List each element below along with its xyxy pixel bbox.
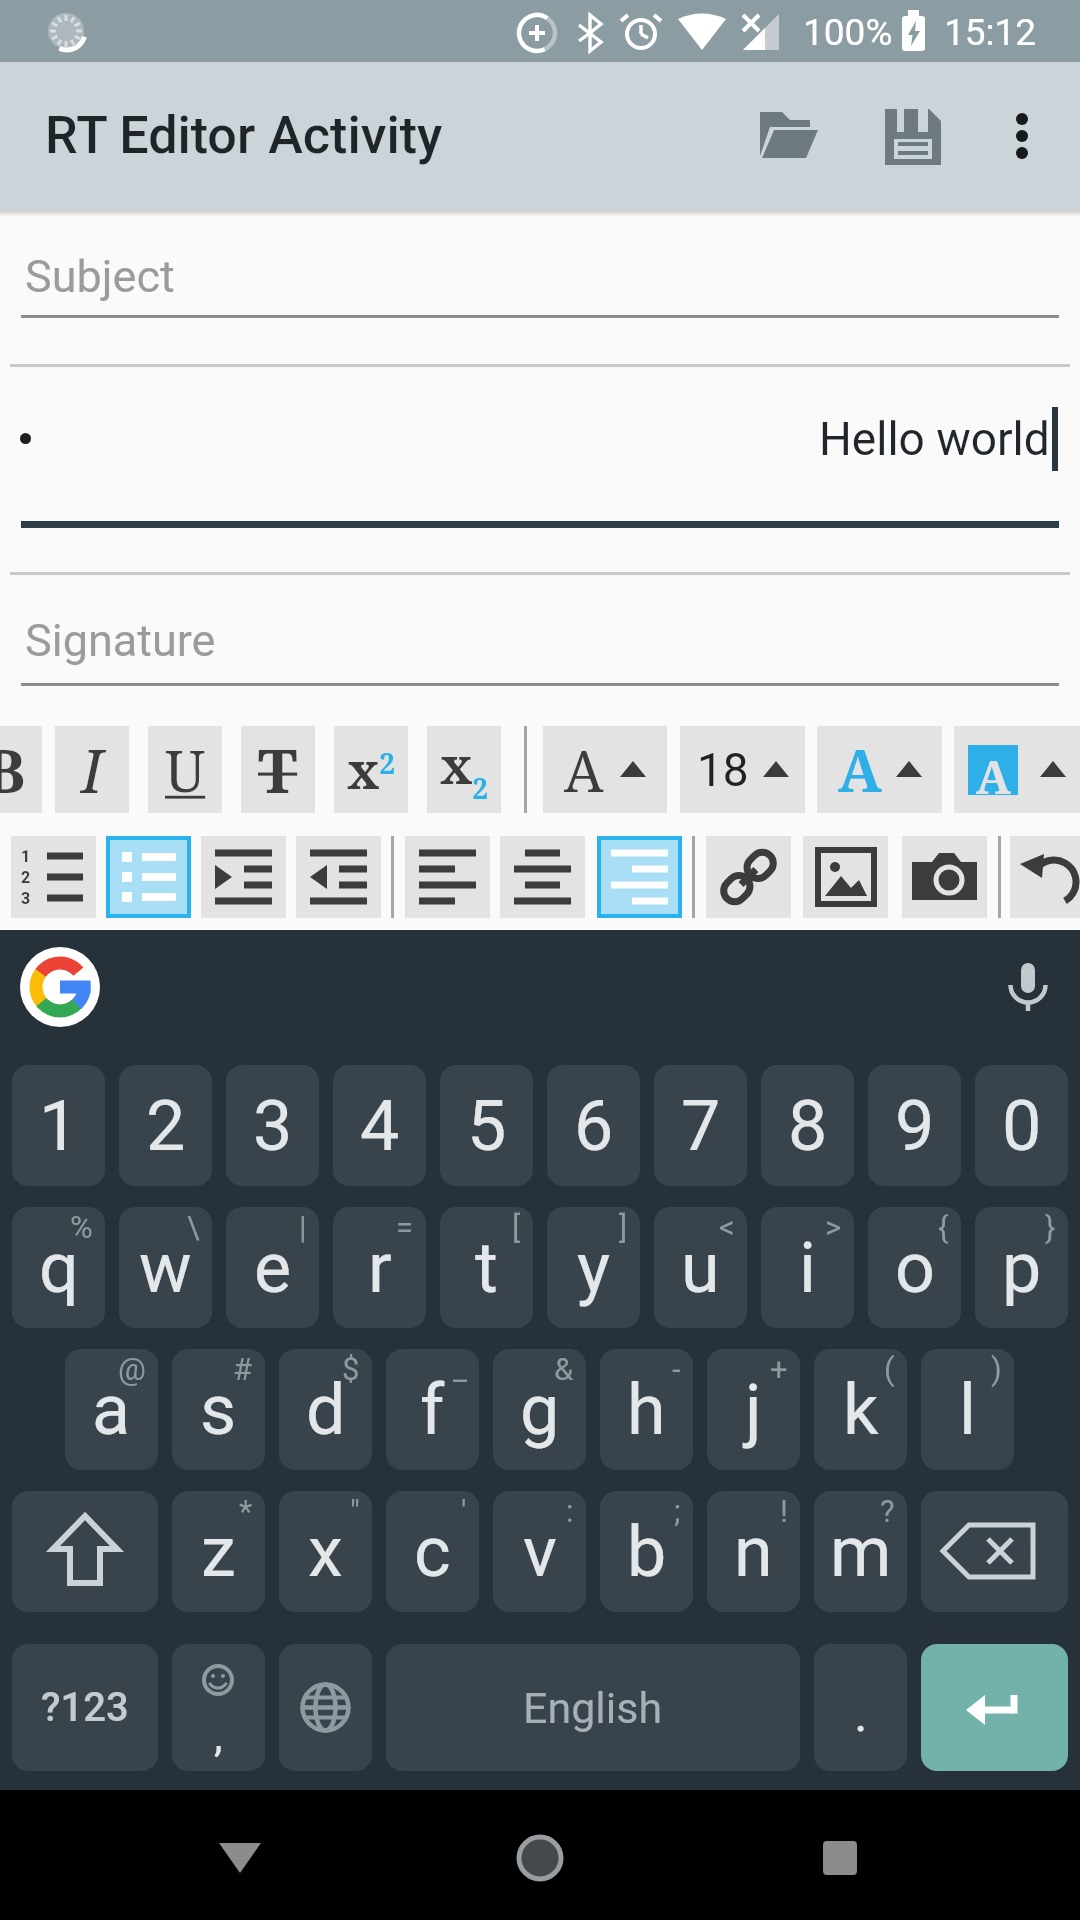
button[interactable]: 6	[547, 1065, 640, 1186]
button[interactable]	[902, 836, 987, 918]
staticText: \	[187, 1209, 200, 1245]
button[interactable]: 1 2 3	[11, 836, 96, 918]
staticText: 3	[253, 1085, 293, 1167]
staticText: r	[368, 1227, 392, 1309]
button[interactable]: x2	[427, 726, 501, 813]
staticText: #	[233, 1351, 253, 1387]
button[interactable]	[706, 836, 791, 918]
button[interactable]	[201, 836, 286, 918]
staticText: [	[512, 1209, 521, 1245]
button[interactable]: g	[493, 1349, 586, 1470]
button[interactable]: 1	[12, 1065, 105, 1186]
button[interactable]: c	[386, 1491, 479, 1612]
button[interactable]	[190, 1810, 290, 1900]
button[interactable]: x2	[334, 726, 408, 813]
button[interactable]: f	[386, 1349, 479, 1470]
button[interactable]: Signature	[22, 604, 1058, 684]
button[interactable]: s	[172, 1349, 265, 1470]
button[interactable]: 9	[868, 1065, 961, 1186]
button[interactable]	[978, 84, 1068, 188]
staticText: >	[825, 1209, 842, 1245]
button[interactable]	[803, 836, 888, 918]
button[interactable]: A	[543, 726, 667, 813]
button[interactable]: k	[814, 1349, 907, 1470]
staticText: o	[895, 1227, 935, 1309]
staticText: a	[92, 1369, 131, 1451]
button[interactable]	[405, 836, 490, 918]
staticText: (	[884, 1351, 895, 1387]
button[interactable]	[20, 947, 100, 1027]
button[interactable]: o	[868, 1207, 961, 1328]
staticText: 5	[467, 1085, 507, 1167]
staticText: c	[414, 1511, 451, 1593]
button[interactable]: y	[547, 1207, 640, 1328]
button[interactable]: Hello world	[22, 404, 1050, 474]
button[interactable]: 4	[333, 1065, 426, 1186]
button[interactable]: b	[600, 1491, 693, 1612]
staticText: A	[838, 730, 882, 809]
button[interactable]: Subject	[22, 240, 1058, 318]
button[interactable]: 5	[440, 1065, 533, 1186]
button[interactable]	[12, 1491, 158, 1612]
button[interactable]	[1010, 836, 1080, 918]
button[interactable]: x	[279, 1491, 372, 1612]
button[interactable]: u	[654, 1207, 747, 1328]
button[interactable]: a	[65, 1349, 158, 1470]
button[interactable]	[490, 1810, 590, 1900]
staticText: 8	[788, 1085, 828, 1167]
button[interactable]	[861, 84, 965, 188]
staticText: 4	[360, 1085, 400, 1167]
staticText: .	[854, 1683, 868, 1744]
button[interactable]	[106, 836, 191, 918]
button[interactable]: 2	[119, 1065, 212, 1186]
staticText: $	[342, 1351, 360, 1387]
button[interactable]: .	[814, 1644, 907, 1771]
button[interactable]: B	[0, 726, 42, 813]
staticText: ;	[674, 1493, 681, 1529]
staticText: g	[520, 1369, 560, 1451]
button[interactable]: 7	[654, 1065, 747, 1186]
button[interactable]: w	[119, 1207, 212, 1328]
button[interactable]: t	[440, 1207, 533, 1328]
button[interactable]: 8	[761, 1065, 854, 1186]
button[interactable]: 0	[975, 1065, 1068, 1186]
button[interactable]: d	[279, 1349, 372, 1470]
button[interactable]	[279, 1644, 372, 1771]
button[interactable]	[597, 836, 682, 918]
button[interactable]	[775, 1810, 875, 1900]
button[interactable]	[296, 836, 381, 918]
staticText: p	[1002, 1227, 1042, 1309]
button[interactable]: I	[55, 726, 129, 813]
button[interactable]: 3	[226, 1065, 319, 1186]
staticText: s	[200, 1369, 237, 1451]
button[interactable]: q	[12, 1207, 105, 1328]
button[interactable]	[736, 84, 840, 188]
staticText: =	[396, 1209, 414, 1245]
button[interactable]: U	[148, 726, 222, 813]
button[interactable]: p	[975, 1207, 1068, 1328]
button[interactable]: i	[761, 1207, 854, 1328]
button[interactable]: z	[172, 1491, 265, 1612]
button[interactable]	[500, 836, 585, 918]
button[interactable]: e	[226, 1207, 319, 1328]
button[interactable]	[921, 1491, 1068, 1612]
button[interactable]	[988, 948, 1068, 1028]
button[interactable]: h	[600, 1349, 693, 1470]
staticText: z	[201, 1511, 236, 1593]
button[interactable]: ,	[172, 1644, 265, 1771]
button[interactable]: A	[817, 726, 942, 813]
staticText: %	[70, 1209, 93, 1245]
button[interactable]: 18	[680, 726, 805, 813]
button[interactable]: n	[707, 1491, 800, 1612]
button[interactable]: l	[921, 1349, 1014, 1470]
button[interactable]: T	[241, 726, 315, 813]
staticText: x2	[347, 736, 396, 804]
button[interactable]: English	[386, 1644, 800, 1771]
button[interactable]: r	[333, 1207, 426, 1328]
button[interactable]: ?123	[12, 1644, 158, 1771]
button[interactable]: j	[707, 1349, 800, 1470]
button[interactable]	[921, 1644, 1068, 1771]
button[interactable]: v	[493, 1491, 586, 1612]
button[interactable]: m	[814, 1491, 907, 1612]
button[interactable]: A	[954, 726, 1080, 813]
